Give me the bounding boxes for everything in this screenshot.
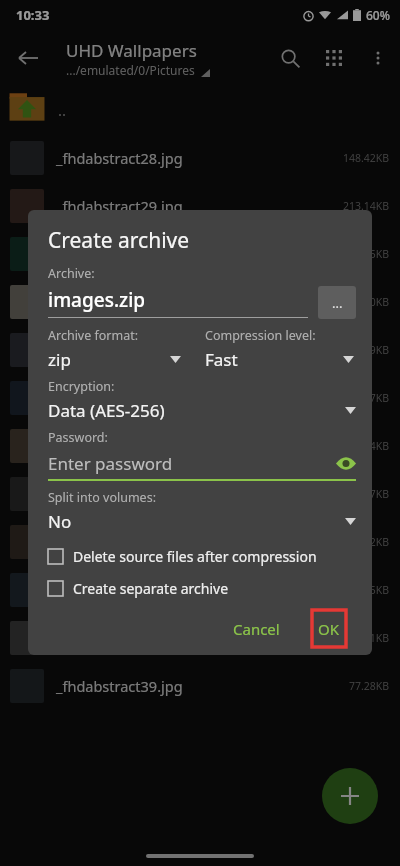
staticText: _fhdabstract34.jpg bbox=[56, 436, 349, 456]
button[interactable]: Delete source files after compression bbox=[48, 540, 356, 572]
button[interactable]: More options bbox=[356, 36, 400, 80]
staticText: 60% bbox=[366, 7, 390, 23]
staticText: _fhdabstract29.jpg bbox=[56, 196, 343, 216]
staticText: _fhdabstract33.jpg bbox=[56, 388, 343, 408]
staticText: 77.28KB bbox=[349, 679, 390, 693]
button[interactable]: _fhdabstract38.jpg bbox=[0, 614, 400, 662]
button[interactable]: _fhdabstract37.jpg bbox=[0, 566, 400, 614]
staticText: Delete source files after compression bbox=[73, 547, 317, 566]
button[interactable]: .. bbox=[0, 86, 400, 134]
staticText: 244.02KB bbox=[343, 535, 390, 549]
staticText: images.zip bbox=[48, 287, 146, 313]
staticText: Archive format: bbox=[48, 327, 139, 344]
staticText: Cancel bbox=[233, 619, 280, 639]
button[interactable]: Back bbox=[6, 36, 50, 80]
staticText: Archive: bbox=[48, 265, 95, 282]
staticText: 213.14KB bbox=[343, 199, 390, 213]
staticText: _fhdabstract32.jpg bbox=[56, 340, 343, 360]
staticText: Create separate archive bbox=[73, 579, 229, 598]
staticText: ... bbox=[332, 294, 343, 312]
staticText: Enter password bbox=[48, 452, 336, 475]
staticText: _fhdabstract30.jpg bbox=[56, 244, 349, 264]
button[interactable]: images.zip bbox=[48, 287, 308, 318]
staticText: .../emulated/0/Pictures bbox=[66, 62, 195, 78]
staticText: Compression level: bbox=[205, 327, 316, 344]
staticText: 88.64KB bbox=[349, 439, 390, 453]
button[interactable]: zip bbox=[48, 344, 181, 374]
button[interactable]: _fhdabstract36.jpg bbox=[0, 518, 400, 566]
staticText: .. bbox=[58, 100, 67, 120]
staticText: _fhdabstract28.jpg bbox=[56, 148, 343, 168]
staticText: Create archive bbox=[48, 226, 190, 255]
button[interactable]: View mode bbox=[312, 36, 356, 80]
button[interactable]: _fhdabstract29.jpg bbox=[0, 182, 400, 230]
staticText: _fhdabstract36.jpg bbox=[56, 532, 343, 552]
staticText: Encryption: bbox=[48, 378, 115, 395]
other: Show password bbox=[336, 457, 356, 470]
button[interactable]: Data (AES-256) bbox=[48, 395, 356, 425]
button[interactable]: No bbox=[48, 506, 356, 536]
staticText: _fhdabstract31.jpg bbox=[56, 292, 343, 312]
button[interactable]: _fhdabstract39.jpg bbox=[0, 662, 400, 710]
staticText: Split into volumes: bbox=[48, 489, 156, 506]
staticText: 330.10KB bbox=[343, 295, 390, 309]
staticText: 120.55KB bbox=[343, 583, 390, 597]
staticText: 189.29KB bbox=[343, 343, 390, 357]
button[interactable]: Cancel bbox=[219, 611, 294, 647]
button[interactable]: OK bbox=[312, 610, 346, 647]
button[interactable]: Search bbox=[268, 36, 312, 80]
staticText: _fhdabstract37.jpg bbox=[56, 580, 343, 600]
staticText: _fhdabstract39.jpg bbox=[56, 676, 349, 696]
staticText: Fast bbox=[205, 348, 343, 371]
button[interactable]: _fhdabstract28.jpg bbox=[0, 134, 400, 182]
staticText: 402.47KB bbox=[343, 391, 390, 405]
button[interactable]: _fhdabstract33.jpg bbox=[0, 374, 400, 422]
button[interactable]: Enter password bbox=[48, 452, 356, 475]
staticText: No bbox=[48, 510, 345, 533]
staticText: zip bbox=[48, 348, 170, 371]
button[interactable]: Browse bbox=[318, 286, 356, 319]
staticText: 310.91KB bbox=[343, 631, 390, 645]
staticText: Password: bbox=[48, 429, 108, 446]
button[interactable]: Fast bbox=[205, 344, 354, 374]
staticText: 10:33 bbox=[16, 6, 50, 24]
button[interactable]: Create separate archive bbox=[48, 572, 356, 604]
button[interactable]: Add bbox=[322, 768, 378, 824]
button[interactable]: _fhdabstract32.jpg bbox=[0, 326, 400, 374]
staticText: _fhdabstract35.jpg bbox=[56, 484, 343, 504]
staticText: 148.42KB bbox=[343, 151, 390, 165]
staticText: _fhdabstract38.jpg bbox=[56, 628, 343, 648]
button[interactable]: _fhdabstract31.jpg bbox=[0, 278, 400, 326]
staticText: 151.37KB bbox=[343, 487, 390, 501]
staticText: Data (AES-256) bbox=[48, 399, 345, 422]
staticText: 97.85KB bbox=[349, 247, 390, 261]
button[interactable]: _fhdabstract34.jpg bbox=[0, 422, 400, 470]
staticText: OK bbox=[318, 619, 340, 639]
staticText: UHD Wallpapers bbox=[66, 39, 197, 62]
button[interactable]: _fhdabstract30.jpg bbox=[0, 230, 400, 278]
button[interactable]: _fhdabstract35.jpg bbox=[0, 470, 400, 518]
